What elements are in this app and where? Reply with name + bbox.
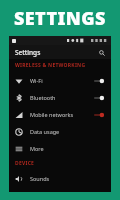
button[interactable]: Wi-Fi <box>9 72 111 89</box>
button[interactable]: Search <box>96 47 107 58</box>
button[interactable]: Bluetooth <box>9 89 111 106</box>
staticText: WIRELESS & NETWORKING <box>15 62 86 69</box>
button[interactable]: Toggle <box>93 94 105 102</box>
button[interactable]: Sounds <box>9 170 111 187</box>
button[interactable]: Mobile networks <box>9 106 111 123</box>
button[interactable]: Toggle <box>93 111 105 119</box>
button[interactable]: Data usage <box>9 123 111 140</box>
staticText: DEVICE <box>15 160 35 167</box>
button[interactable]: More <box>9 140 111 157</box>
staticText: Bluetooth <box>30 94 93 101</box>
staticText: Mobile networks <box>30 111 93 118</box>
staticText: Data usage <box>30 128 105 135</box>
staticText: SETTINGS <box>14 6 106 31</box>
staticText: Wi-Fi <box>30 77 93 84</box>
staticText: Sounds <box>30 175 105 182</box>
button[interactable]: Toggle <box>93 77 105 85</box>
staticText: Settings <box>15 48 41 57</box>
staticText: More <box>30 145 105 152</box>
